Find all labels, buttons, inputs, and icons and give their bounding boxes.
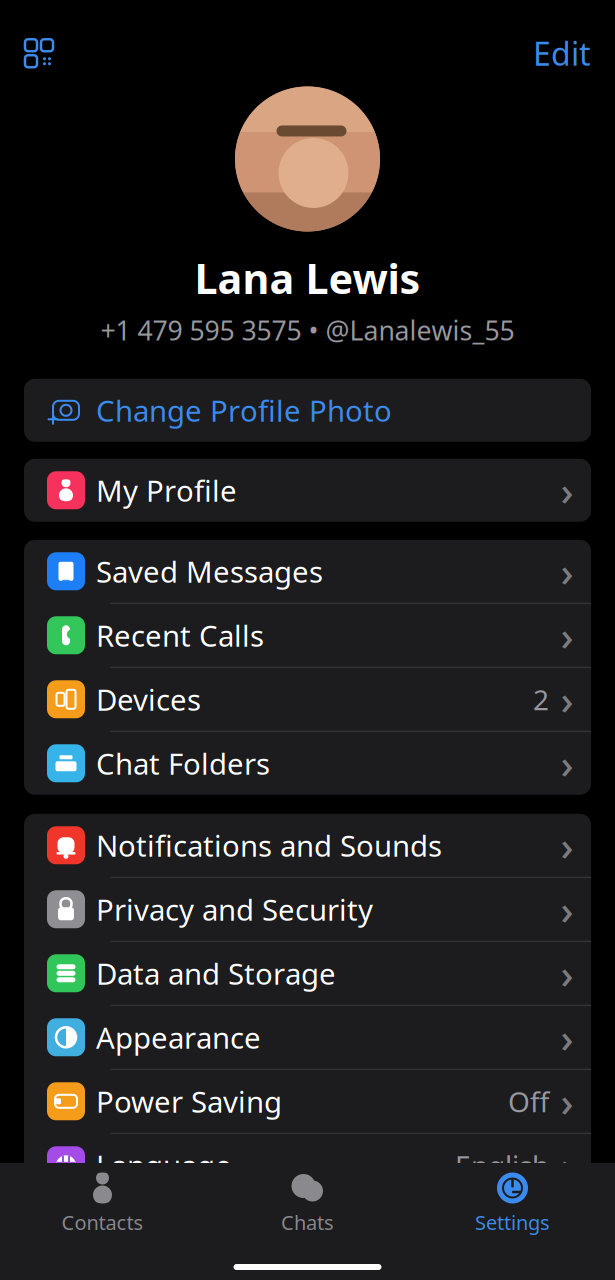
- button[interactable]: Change Profile Photo: [24, 379, 591, 442]
- staticText: Chat Folders: [96, 744, 270, 783]
- staticText: ›: [560, 737, 573, 790]
- button[interactable]: Data and Storage: [24, 942, 591, 1005]
- button[interactable]: Chats: [205, 1172, 410, 1236]
- staticText: ›: [560, 464, 573, 517]
- staticText: Recent Calls: [96, 616, 264, 655]
- staticText: Power Saving: [96, 1082, 282, 1121]
- staticText: Privacy and Security: [96, 890, 373, 929]
- staticText: ›: [560, 1075, 573, 1128]
- staticText: Devices: [96, 680, 201, 719]
- staticText: Notifications and Sounds: [96, 826, 442, 865]
- button[interactable]: Privacy and Security: [24, 878, 591, 941]
- button[interactable]: Chat Folders: [24, 732, 591, 795]
- staticText: ›: [560, 819, 573, 872]
- staticText: Lana Lewis: [194, 250, 420, 305]
- button[interactable]: Saved Messages: [24, 540, 591, 603]
- staticText: ›: [560, 883, 573, 936]
- staticText: Language: [96, 1146, 232, 1185]
- button[interactable]: Contacts: [0, 1172, 205, 1236]
- staticText: Appearance: [96, 1018, 261, 1057]
- staticText: Off: [508, 1083, 549, 1120]
- staticText: Change Profile Photo: [96, 391, 392, 430]
- staticText: ›: [560, 1011, 573, 1064]
- staticText: ›: [560, 545, 573, 598]
- staticText: Settings: [475, 1209, 550, 1236]
- button[interactable]: Devices: [24, 668, 591, 731]
- button[interactable]: Appearance: [24, 1006, 591, 1069]
- staticText: +1 479 595 3575 • @Lanalewis_55: [100, 312, 514, 348]
- staticText: Saved Messages: [96, 552, 323, 591]
- staticText: Edit: [533, 32, 591, 74]
- button[interactable]: Profile photo: [235, 86, 380, 231]
- staticText: English: [455, 1147, 549, 1184]
- staticText: ›: [560, 1139, 573, 1192]
- staticText: 2: [533, 681, 549, 718]
- staticText: My Profile: [96, 471, 237, 510]
- button[interactable]: My QR code: [14, 28, 64, 78]
- button[interactable]: Language: [24, 1134, 591, 1197]
- button[interactable]: Edit: [523, 22, 601, 84]
- staticText: Data and Storage: [96, 954, 336, 993]
- button[interactable]: Recent Calls: [24, 604, 591, 667]
- staticText: ›: [560, 673, 573, 726]
- button[interactable]: Power Saving: [24, 1070, 591, 1133]
- button[interactable]: My Profile: [24, 459, 591, 522]
- staticText: Contacts: [61, 1209, 143, 1236]
- button[interactable]: Settings: [410, 1172, 615, 1236]
- button[interactable]: Notifications and Sounds: [24, 814, 591, 877]
- staticText: ›: [560, 609, 573, 662]
- staticText: Chats: [281, 1209, 334, 1236]
- staticText: ›: [560, 947, 573, 1000]
